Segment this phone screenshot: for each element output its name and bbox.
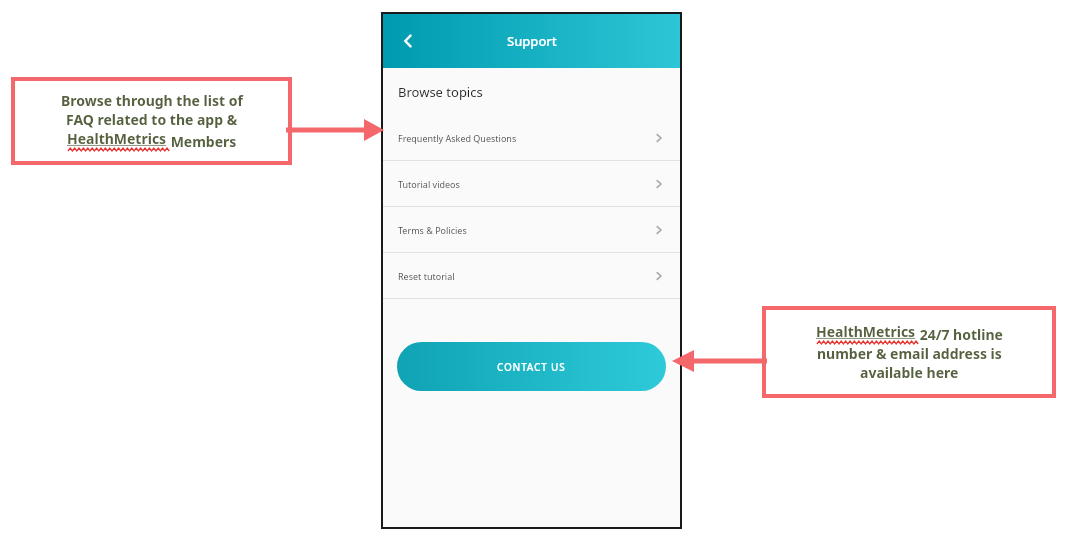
- button[interactable]: Back: [391, 24, 425, 58]
- button[interactable]: Tutorial videos: [383, 161, 680, 206]
- staticText: Browse through the list of: [61, 91, 243, 110]
- button[interactable]: Reset tutorial: [383, 253, 680, 298]
- staticText: HealthMetrics: [816, 322, 916, 341]
- staticText: 24/7 hotline: [916, 325, 1003, 344]
- staticText: Frequently Asked Questions: [398, 132, 653, 144]
- button[interactable]: Terms & Policies: [383, 207, 680, 252]
- staticText: Browse topics: [398, 83, 483, 101]
- staticText: number & email address is: [817, 344, 1002, 363]
- staticText: Tutorial videos: [398, 178, 653, 190]
- staticText: CONTACT US: [497, 360, 566, 374]
- staticText: FAQ related to the app &: [66, 110, 238, 129]
- staticText: Members: [167, 132, 237, 151]
- staticText: available here: [860, 363, 959, 382]
- button[interactable]: CONTACT US: [397, 342, 666, 391]
- staticText: Reset tutorial: [398, 270, 653, 282]
- staticText: Terms & Policies: [398, 224, 653, 236]
- staticText: Support: [507, 32, 557, 50]
- staticText: HealthMetrics: [67, 129, 167, 148]
- button[interactable]: Frequently Asked Questions: [383, 115, 680, 160]
